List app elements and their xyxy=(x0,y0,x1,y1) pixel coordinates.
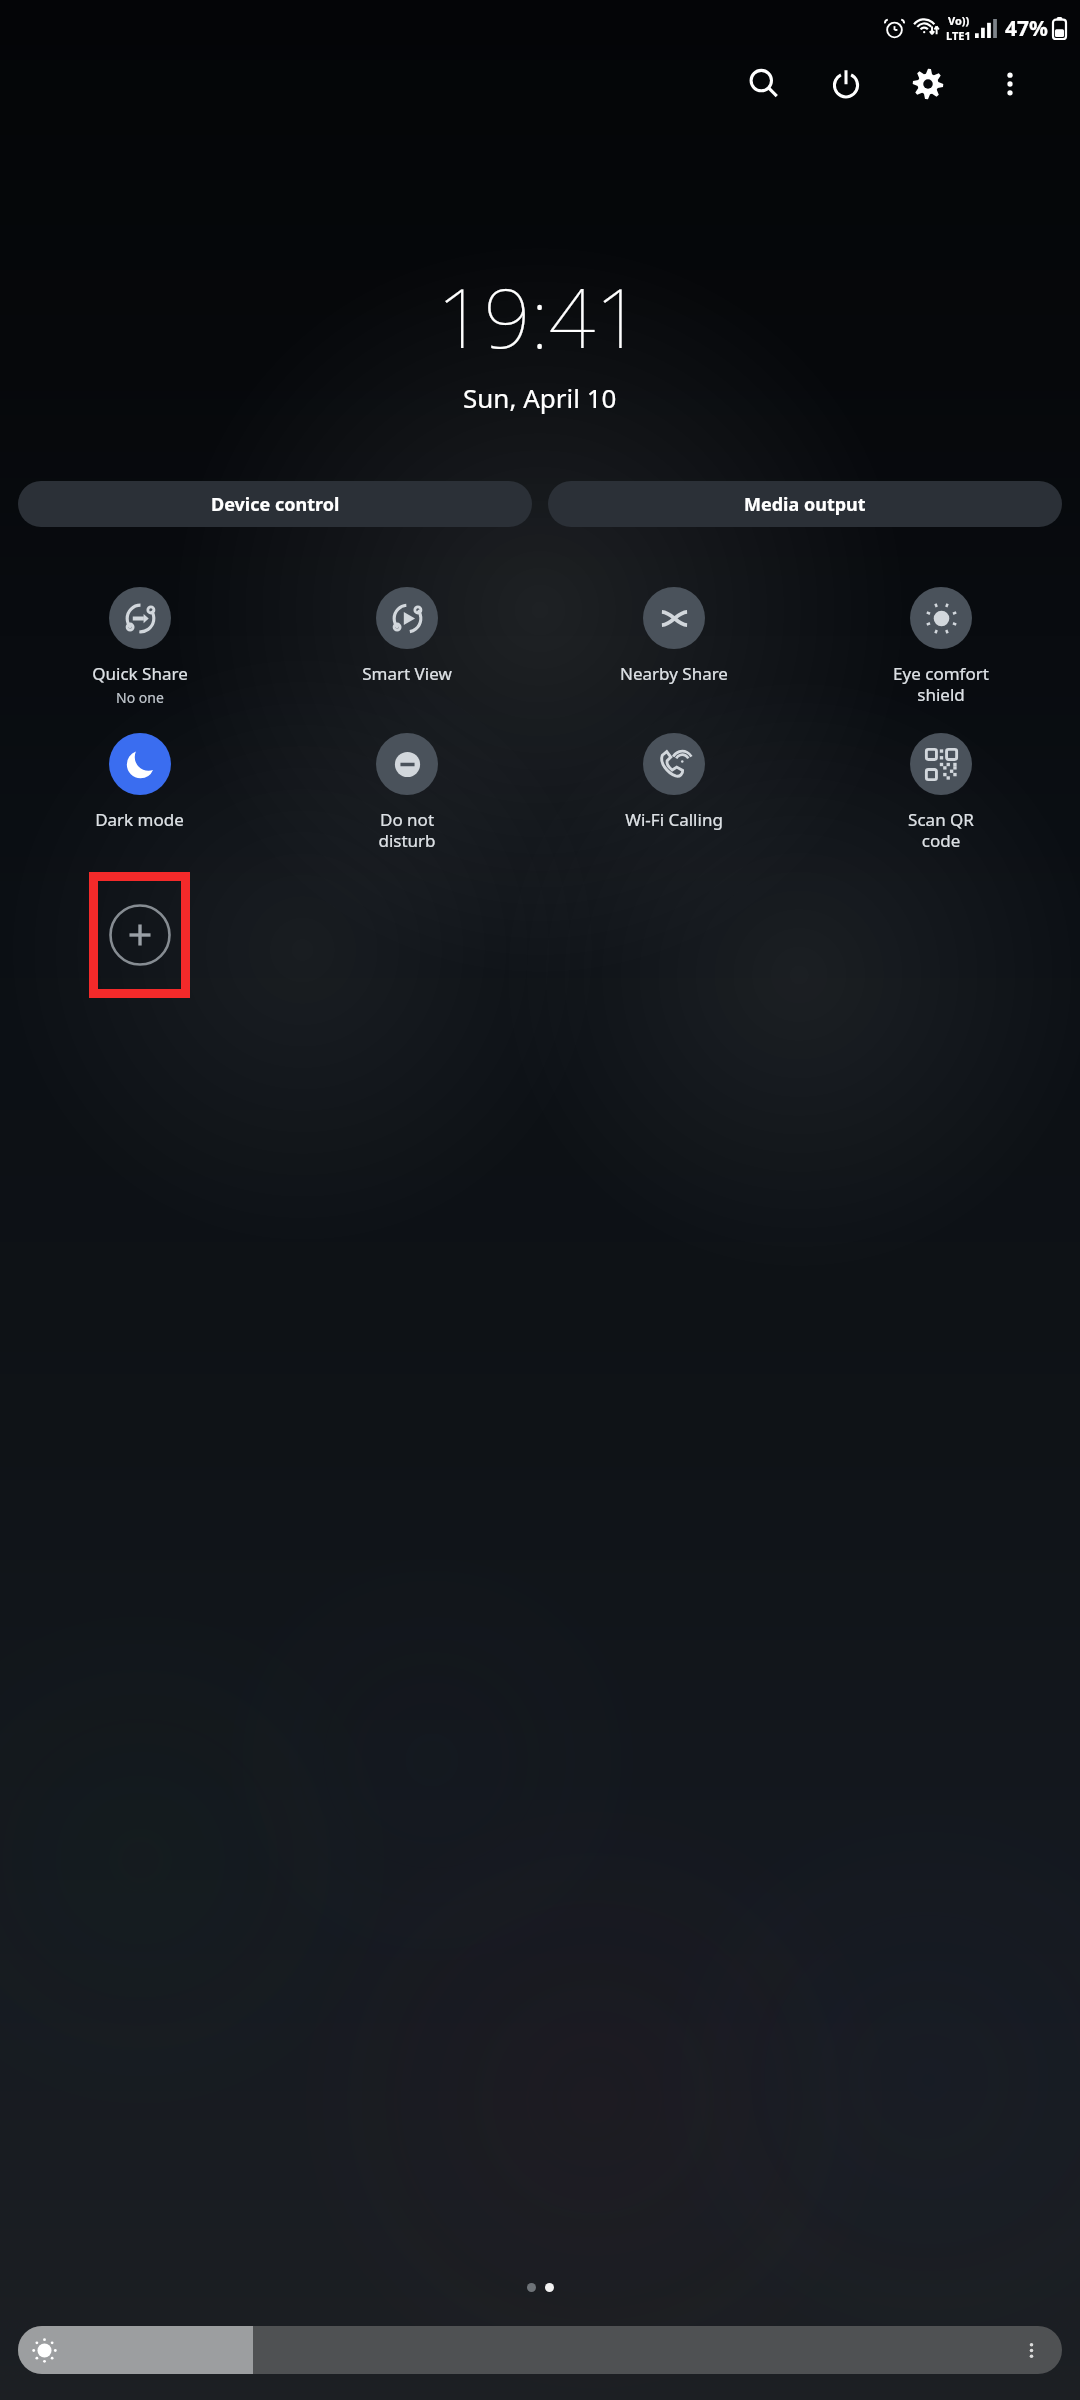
button[interactable]: Do not disturb xyxy=(273,733,540,852)
button[interactable]: Settings xyxy=(900,56,956,112)
staticText: Do not disturb xyxy=(378,808,436,852)
staticText: Dark mode xyxy=(95,808,184,831)
button[interactable]: Scan QR code xyxy=(807,733,1074,852)
staticText: 47% xyxy=(1005,14,1048,43)
staticText: No one xyxy=(116,688,164,707)
button[interactable]: Eye comfort shield xyxy=(807,587,1074,706)
staticText: Eye comfort shield xyxy=(893,662,989,706)
staticText: Smart View xyxy=(362,662,452,685)
button[interactable]: Device control xyxy=(18,481,532,527)
button[interactable]: Brightness options xyxy=(1014,2333,1048,2367)
staticText: Nearby Share xyxy=(620,662,728,685)
staticText: Vo)) xyxy=(948,13,970,28)
staticText: LTE1 xyxy=(946,28,971,43)
staticText: Media output xyxy=(744,492,866,517)
button[interactable]: Quick Share xyxy=(6,587,273,707)
button[interactable]: Media output xyxy=(548,481,1062,527)
staticText: Sun, April 10 xyxy=(463,380,617,415)
staticText: Quick Share xyxy=(92,662,188,685)
button[interactable]: Add tile xyxy=(89,872,190,998)
button[interactable]: Nearby Share xyxy=(540,587,807,685)
button[interactable]: Wi-Fi Calling xyxy=(540,733,807,831)
button[interactable]: Dark mode xyxy=(6,733,273,831)
staticText: Scan QR code xyxy=(908,808,974,852)
button[interactable]: Brightness xyxy=(18,2326,1062,2374)
button[interactable]: More options xyxy=(982,56,1038,112)
button[interactable]: Search xyxy=(736,56,792,112)
staticText: Device control xyxy=(211,492,340,517)
button[interactable]: Power xyxy=(818,56,874,112)
staticText: 19:41 xyxy=(437,260,643,372)
button[interactable]: Smart View xyxy=(273,587,540,685)
staticText: Wi-Fi Calling xyxy=(625,808,723,831)
